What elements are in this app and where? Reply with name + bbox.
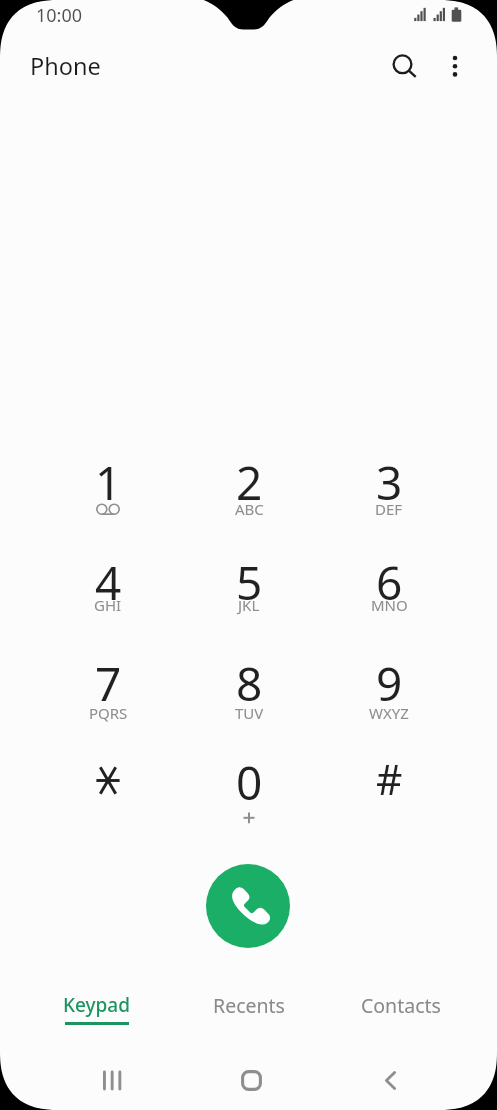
staticText: 6: [376, 551, 403, 614]
button[interactable]: 5: [189, 553, 309, 637]
staticText: JKL: [238, 595, 260, 615]
button[interactable]: 7: [48, 654, 168, 738]
staticText: 5: [236, 551, 263, 614]
staticText: Keypad: [63, 992, 130, 1018]
staticText: 3: [376, 451, 403, 514]
staticText: 4: [95, 551, 122, 614]
button[interactable]: Contacts: [331, 982, 471, 1034]
button[interactable]: 9: [329, 654, 449, 738]
staticText: MNO: [371, 595, 408, 615]
staticText: GHI: [94, 595, 122, 615]
button[interactable]: Home: [217, 1058, 285, 1102]
staticText: #: [376, 751, 403, 807]
button[interactable]: 6: [329, 553, 449, 637]
button[interactable]: 4: [48, 553, 168, 637]
button[interactable]: 2: [189, 453, 309, 537]
staticText: Phone: [30, 50, 101, 82]
staticText: 10:00: [36, 3, 83, 28]
staticText: 0: [236, 751, 263, 814]
button[interactable]: Call: [206, 864, 290, 948]
button[interactable]: 1: [48, 453, 168, 537]
button[interactable]: Recent apps: [78, 1058, 146, 1102]
staticText: 2: [236, 451, 263, 514]
button[interactable]: Recents: [179, 982, 319, 1034]
staticText: 7: [95, 652, 122, 715]
staticText: 1: [95, 451, 122, 514]
staticText: Recents: [213, 992, 285, 1019]
staticText: DEF: [375, 499, 403, 519]
staticText: 9: [376, 652, 403, 715]
staticText: TUV: [235, 703, 264, 723]
button[interactable]: Back: [356, 1058, 424, 1102]
staticText: PQRS: [89, 703, 128, 723]
button[interactable]: 8: [189, 654, 309, 738]
button[interactable]: More options: [435, 44, 475, 84]
button[interactable]: Keypad: [26, 982, 166, 1034]
button[interactable]: Search: [380, 42, 426, 88]
button[interactable]: pound: [329, 753, 449, 837]
staticText: Contacts: [361, 992, 441, 1019]
staticText: WXYZ: [369, 703, 409, 723]
staticText: 8: [236, 652, 263, 715]
button[interactable]: star: [48, 753, 168, 837]
button[interactable]: 0: [189, 753, 309, 837]
staticText: ABC: [235, 499, 264, 519]
button[interactable]: 3: [329, 453, 449, 537]
